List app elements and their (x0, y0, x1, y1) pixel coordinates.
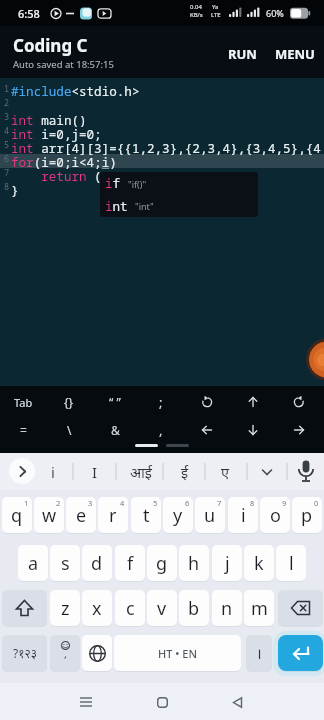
staticText: 0.04 (190, 3, 202, 11)
button[interactable]: n (212, 590, 242, 626)
button[interactable] (290, 457, 322, 486)
staticText: y (173, 503, 183, 528)
button[interactable] (223, 688, 251, 716)
staticText: x (92, 596, 102, 621)
button[interactable]: ?१२३ (2, 635, 47, 671)
staticText: Tab (14, 395, 33, 410)
button[interactable] (72, 688, 100, 716)
staticText: ?१२३ (13, 645, 37, 661)
staticText: h (188, 551, 200, 576)
button[interactable]: {} (46, 388, 92, 416)
button[interactable]: x (82, 590, 112, 626)
staticText: , (159, 421, 163, 439)
button[interactable]: d (82, 545, 112, 581)
button[interactable]: q (2, 497, 32, 533)
staticText: l (289, 551, 294, 576)
button[interactable]: b (179, 590, 209, 626)
button[interactable]: s (50, 545, 80, 581)
button[interactable]: r (98, 497, 128, 533)
staticText: g (156, 551, 168, 576)
button[interactable]: ; (138, 388, 184, 416)
staticText: Auto saved at 18:57:15 (13, 58, 114, 71)
staticText: if (105, 175, 121, 192)
button[interactable]: आई (120, 457, 162, 486)
button[interactable] (82, 635, 112, 671)
button[interactable]: c (115, 590, 145, 626)
button[interactable]: MENU (272, 40, 318, 68)
staticText: k (254, 551, 264, 576)
button[interactable]: a (18, 545, 48, 581)
button[interactable]: i (228, 497, 258, 533)
button[interactable]: , (50, 635, 80, 671)
button[interactable]: v (147, 590, 177, 626)
staticText: = (20, 422, 27, 438)
staticText: KB/s (190, 11, 203, 19)
button[interactable] (230, 416, 276, 444)
button[interactable]: int (100, 195, 258, 217)
button[interactable]: p (292, 497, 322, 533)
button[interactable]: m (244, 590, 274, 626)
button[interactable]: y (163, 497, 193, 533)
button[interactable]: i (38, 457, 68, 486)
staticText: Coding C (13, 34, 88, 57)
button[interactable]: । (246, 635, 272, 671)
button[interactable]: h (179, 545, 209, 581)
staticText: 7 (217, 498, 222, 508)
button[interactable] (184, 388, 230, 416)
staticText: m (251, 596, 268, 621)
button[interactable]: = (0, 416, 46, 444)
staticText: b (188, 596, 200, 621)
staticText: ए (221, 462, 230, 482)
staticText: z (61, 596, 70, 621)
button[interactable] (278, 590, 323, 626)
button[interactable]: g (147, 545, 177, 581)
staticText: d (91, 551, 103, 576)
staticText: 6 (185, 498, 190, 508)
staticText: o (270, 503, 281, 528)
button[interactable]: ए (208, 457, 242, 486)
button[interactable]: l (276, 545, 306, 581)
staticText: \ (67, 422, 72, 438)
staticText: 1 (24, 498, 29, 508)
staticText: ई (181, 462, 189, 482)
button[interactable]: z (50, 590, 80, 626)
button[interactable]: “ ” (92, 388, 138, 416)
button[interactable]: \ (46, 416, 92, 444)
staticText: n (221, 596, 233, 621)
button[interactable]: Tab (0, 388, 46, 416)
staticText: & (111, 422, 120, 438)
button[interactable]: , (138, 416, 184, 444)
button[interactable] (230, 388, 276, 416)
button[interactable]: o (260, 497, 290, 533)
staticText: 8 (250, 498, 255, 508)
button[interactable] (148, 688, 176, 716)
staticText: r (109, 503, 117, 528)
button[interactable]: f (115, 545, 145, 581)
button[interactable]: HT • EN (114, 635, 241, 671)
button[interactable]: u (195, 497, 225, 533)
button[interactable] (302, 335, 324, 383)
button[interactable]: & (92, 416, 138, 444)
button[interactable]: w (34, 497, 64, 533)
button[interactable] (278, 635, 323, 671)
staticText: s (61, 551, 70, 576)
staticText: MENU (275, 45, 315, 63)
button[interactable]: ई (168, 457, 202, 486)
staticText: 3 (88, 498, 93, 508)
button[interactable] (9, 458, 35, 484)
button[interactable] (184, 416, 230, 444)
button[interactable] (2, 590, 47, 626)
staticText: 0 (314, 498, 319, 508)
staticText: 6:58 (18, 6, 40, 21)
button[interactable]: e (66, 497, 96, 533)
button[interactable]: RUN (220, 40, 264, 68)
button[interactable]: j (212, 545, 242, 581)
button[interactable] (252, 457, 282, 486)
button[interactable]: k (244, 545, 274, 581)
staticText: {} (64, 394, 74, 410)
button[interactable]: if (100, 172, 258, 195)
button[interactable] (276, 416, 322, 444)
button[interactable]: I (80, 457, 110, 486)
button[interactable]: t (131, 497, 161, 533)
button[interactable] (276, 388, 322, 416)
